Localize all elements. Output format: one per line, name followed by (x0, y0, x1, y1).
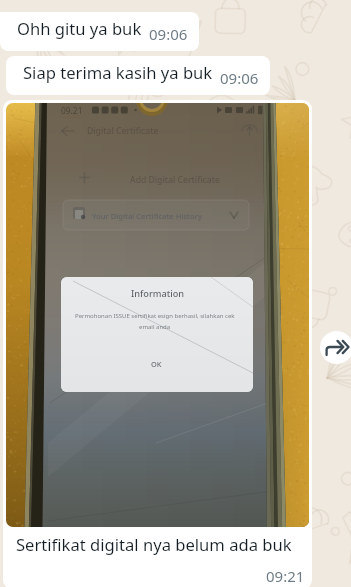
staticText: 09:21 (266, 566, 305, 586)
staticText: Information (131, 287, 185, 300)
staticText: email anda (139, 323, 171, 331)
button[interactable]: Forward message (320, 331, 351, 364)
staticText: 09.21 (61, 105, 83, 116)
button[interactable]: Siap terima kasih ya buk (6, 56, 270, 95)
staticText: Sertifikat digital nya belum ada buk (16, 533, 292, 556)
button[interactable]: 09.21 (3, 100, 312, 587)
staticText: 09:06 (220, 68, 259, 88)
staticText: Your Digital Certificate History (92, 211, 202, 221)
button[interactable]: Ohh gitu ya buk (0, 12, 199, 51)
staticText: Permohonan ISSUE sertifikat esign berhas… (75, 312, 235, 320)
staticText: Siap terima kasih ya buk (23, 61, 213, 84)
staticText: 09:06 (149, 24, 188, 44)
staticText: Digital Certificate (87, 125, 159, 137)
staticText: Ohh gitu ya buk (17, 17, 142, 40)
staticText: Add Digital Certificate (130, 174, 220, 186)
staticText: OK (151, 359, 162, 369)
